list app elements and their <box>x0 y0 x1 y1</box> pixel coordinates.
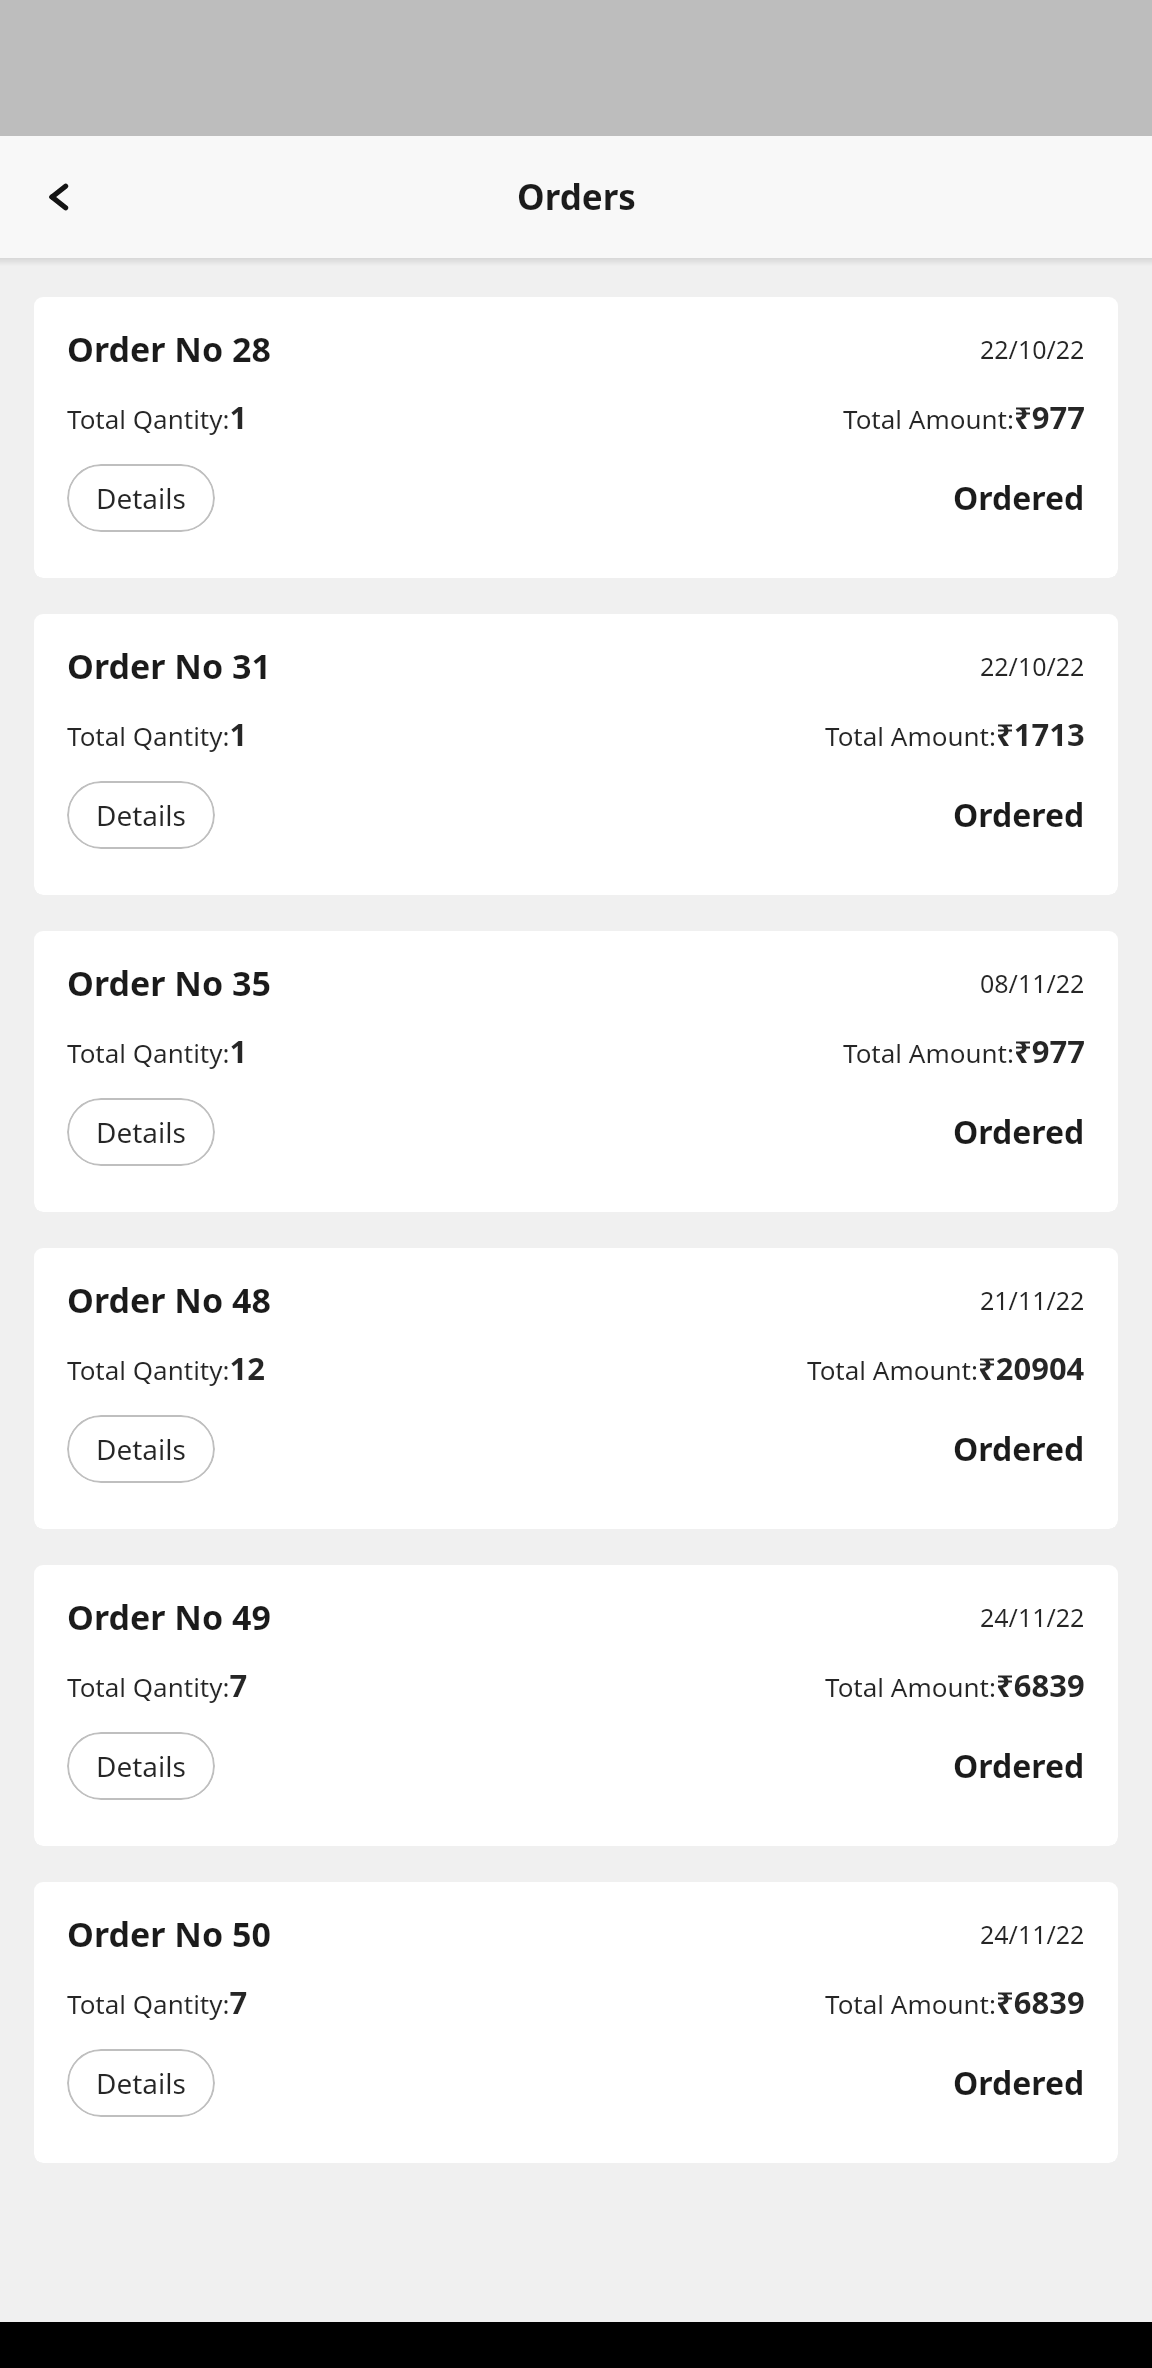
button[interactable]: Order No 35 <box>34 931 1118 1212</box>
staticText: Details <box>96 2064 186 2102</box>
staticText: Ordered <box>953 476 1085 520</box>
staticText: Ordered <box>953 1744 1085 1788</box>
staticText: Order No 28 <box>67 326 271 372</box>
staticText: 24/11/22 <box>980 1600 1085 1634</box>
staticText: Total Amount:₹6839 <box>825 1664 1085 1706</box>
staticText: Order No 31 <box>67 643 271 689</box>
staticText: Order No 50 <box>67 1911 271 1957</box>
staticText: Total Qantity:12 <box>67 1347 265 1389</box>
staticText: Details <box>96 796 186 834</box>
staticText: Total Amount:₹6839 <box>825 1981 1085 2023</box>
staticText: Total Amount:₹977 <box>843 1030 1085 1072</box>
staticText: Order No 49 <box>67 1594 271 1640</box>
staticText: 24/11/22 <box>980 1917 1085 1951</box>
staticText: Ordered <box>953 1427 1085 1471</box>
staticText: 21/11/22 <box>980 1283 1085 1317</box>
button[interactable]: Order No 50 <box>34 1882 1118 2163</box>
staticText: Details <box>96 1747 186 1785</box>
staticText: Total Qantity:1 <box>67 396 248 438</box>
staticText: Orders <box>517 173 636 221</box>
staticText: Ordered <box>953 793 1085 837</box>
button[interactable]: Order No 48 <box>34 1248 1118 1529</box>
button[interactable]: Back <box>18 155 102 239</box>
staticText: Total Amount:₹1713 <box>825 713 1085 755</box>
button[interactable]: Details <box>67 464 215 532</box>
staticText: 22/10/22 <box>980 649 1085 683</box>
staticText: 08/11/22 <box>980 966 1085 1000</box>
staticText: Total Amount:₹20904 <box>807 1347 1085 1389</box>
staticText: Total Qantity:7 <box>67 1664 248 1706</box>
button[interactable]: Details <box>67 1415 215 1483</box>
button[interactable]: Order No 49 <box>34 1565 1118 1846</box>
button[interactable]: Details <box>67 1098 215 1166</box>
staticText: Ordered <box>953 2061 1085 2105</box>
staticText: Total Qantity:1 <box>67 1030 248 1072</box>
staticText: Total Qantity:7 <box>67 1981 248 2023</box>
staticText: Details <box>96 479 186 517</box>
button[interactable]: Details <box>67 1732 215 1800</box>
button[interactable]: Order No 31 <box>34 614 1118 895</box>
staticText: Order No 48 <box>67 1277 271 1323</box>
button[interactable]: Details <box>67 2049 215 2117</box>
staticText: Details <box>96 1430 186 1468</box>
button[interactable]: Details <box>67 781 215 849</box>
staticText: Total Qantity:1 <box>67 713 248 755</box>
staticText: Ordered <box>953 1110 1085 1154</box>
staticText: Total Amount:₹977 <box>843 396 1085 438</box>
staticText: Details <box>96 1113 186 1151</box>
button[interactable]: Order No 28 <box>34 297 1118 578</box>
staticText: Order No 35 <box>67 960 271 1006</box>
staticText: 22/10/22 <box>980 332 1085 366</box>
